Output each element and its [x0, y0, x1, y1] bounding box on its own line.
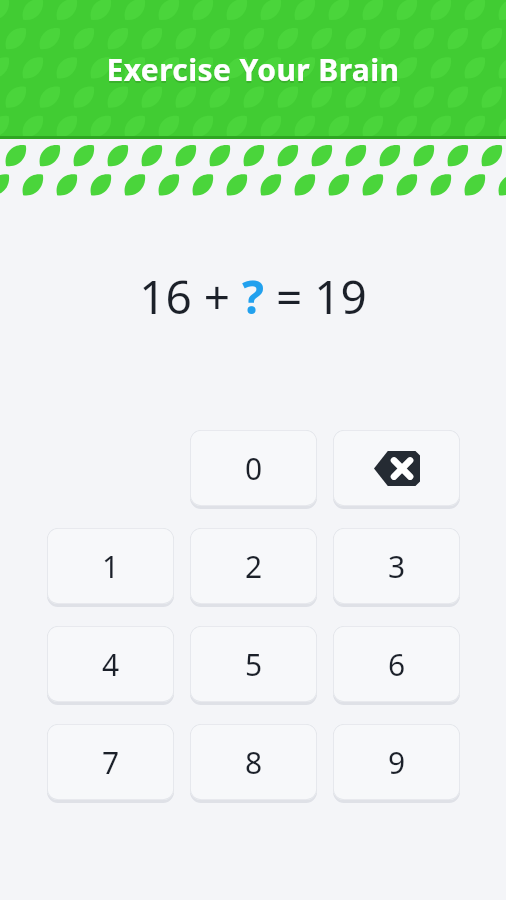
- staticText: 9: [388, 742, 406, 783]
- staticText: 5: [245, 644, 263, 685]
- staticText: 1: [102, 546, 120, 587]
- button[interactable]: 7: [47, 724, 174, 800]
- staticText: 7: [102, 742, 120, 783]
- staticText: 2: [245, 546, 263, 587]
- button[interactable]: 9: [333, 724, 460, 800]
- button[interactable]: 8: [190, 724, 317, 800]
- staticText: 3: [388, 546, 406, 587]
- staticText: 6: [388, 644, 406, 685]
- staticText: 16 + ? = 19: [0, 265, 506, 328]
- staticText: 4: [102, 644, 120, 685]
- button[interactable]: 2: [190, 528, 317, 604]
- button[interactable]: 1: [47, 528, 174, 604]
- staticText: Exercise Your Brain: [0, 51, 506, 92]
- button[interactable]: 4: [47, 626, 174, 702]
- button[interactable]: Backspace: [333, 430, 460, 506]
- button[interactable]: 3: [333, 528, 460, 604]
- button[interactable]: 0: [190, 430, 317, 506]
- staticText: 8: [245, 742, 263, 783]
- button[interactable]: 5: [190, 626, 317, 702]
- button[interactable]: 6: [333, 626, 460, 702]
- staticText: 0: [245, 448, 263, 489]
- staticText: Exercise Your Brain: [0, 49, 506, 90]
